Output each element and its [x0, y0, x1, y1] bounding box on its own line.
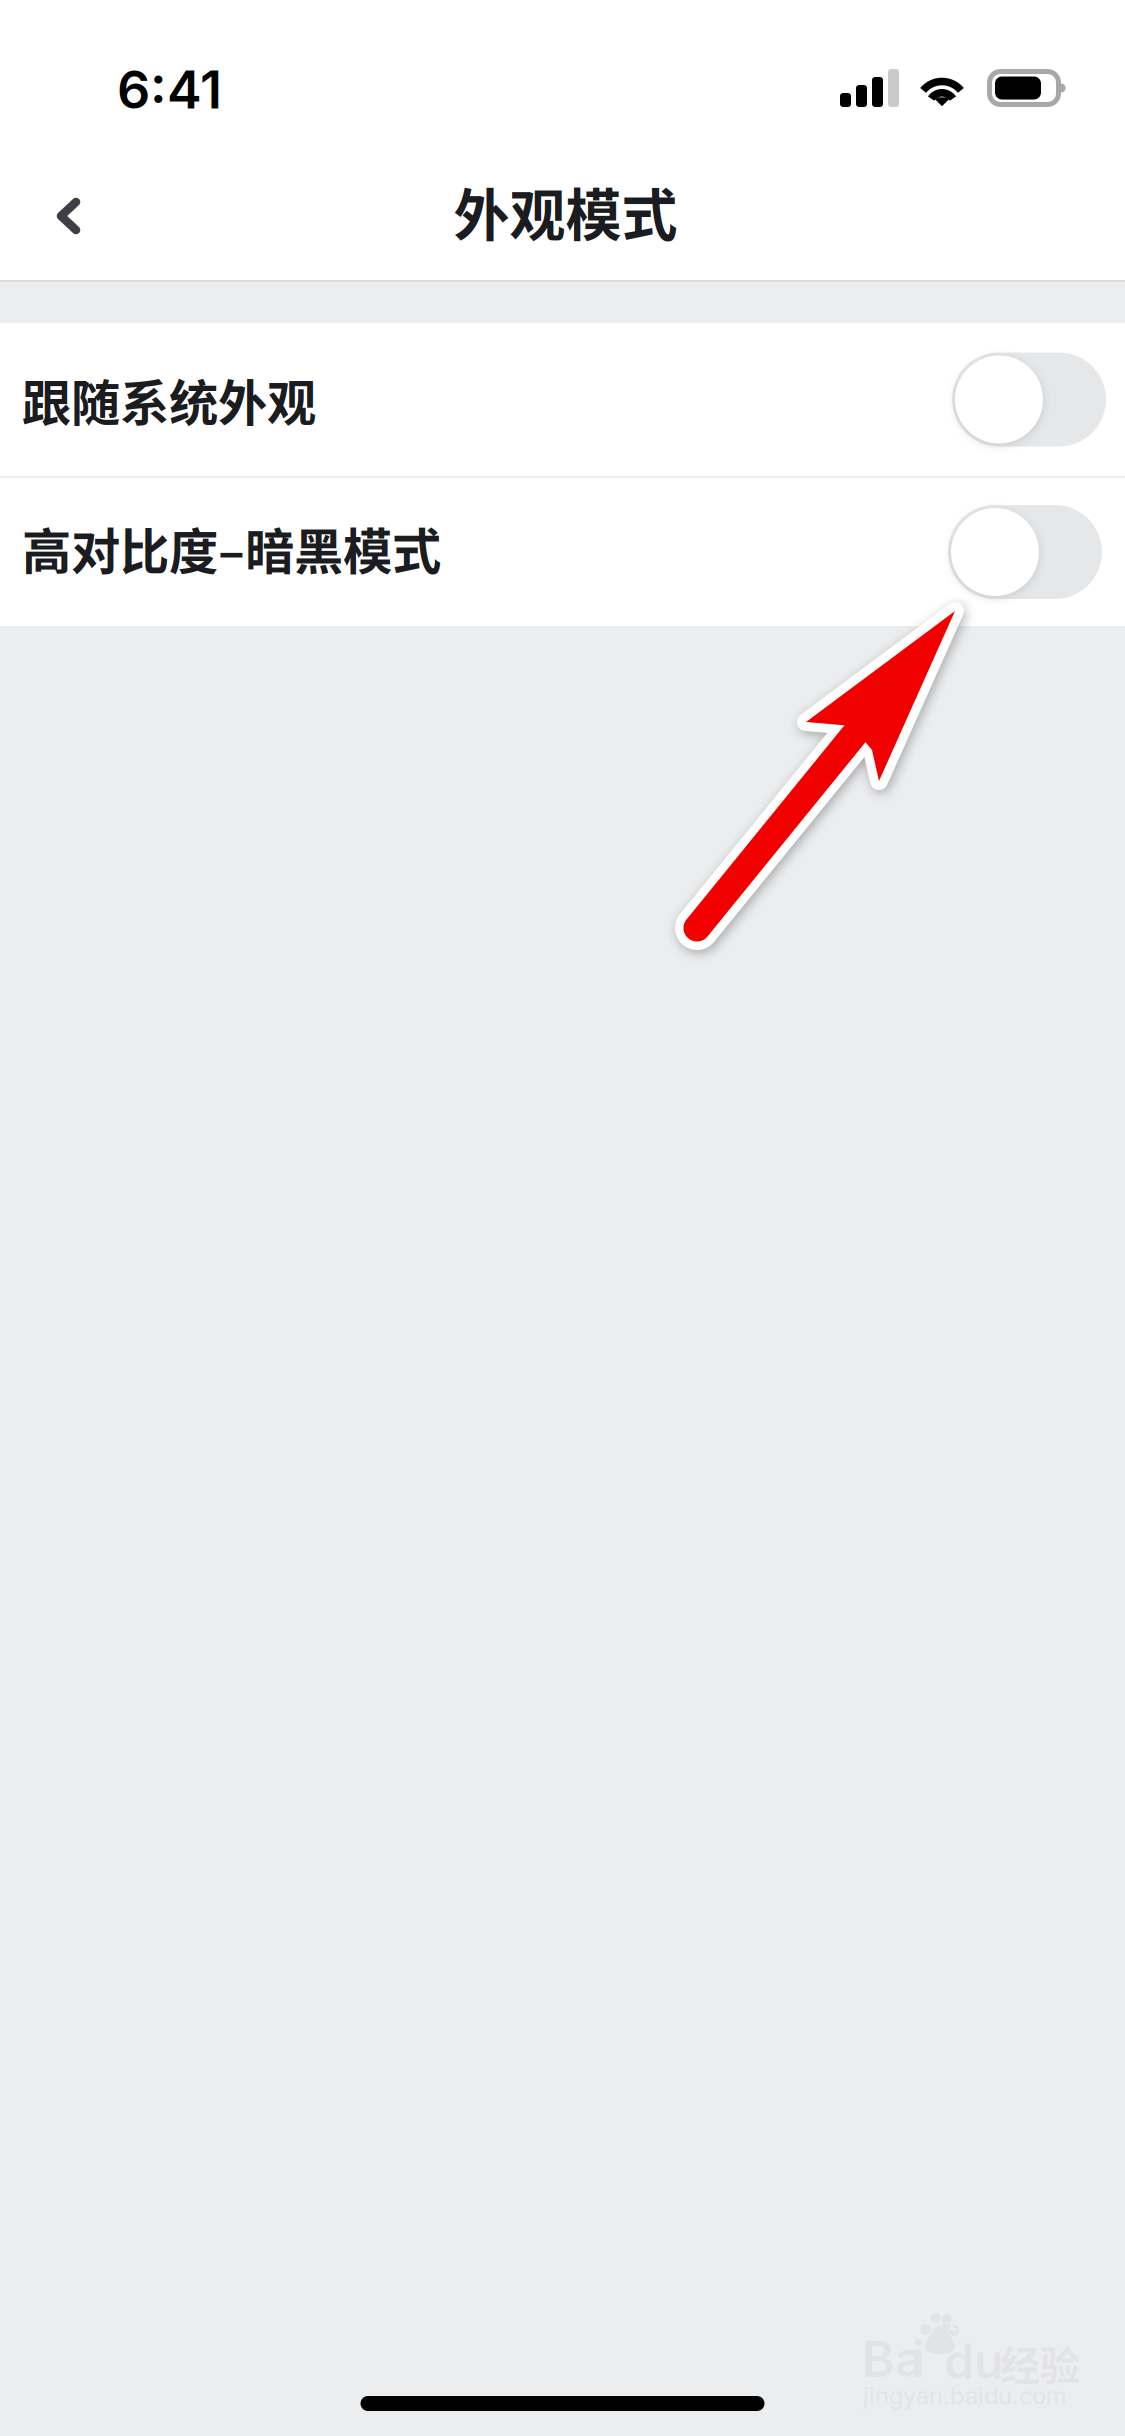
button[interactable]: 高对比度–暗黑模式	[0, 478, 1125, 626]
staticText: 高对比度–暗黑模式	[22, 512, 441, 584]
staticText: 6:41	[117, 58, 222, 121]
staticText: du	[944, 2332, 1003, 2390]
staticText: 经验	[1000, 2334, 1080, 2392]
staticText: i	[912, 2329, 925, 2389]
staticText: Ba	[862, 2329, 923, 2389]
staticText: 外观模式	[453, 170, 677, 252]
button[interactable]: Back	[14, 147, 116, 249]
staticText: jingyan.baidu.com	[863, 2381, 1067, 2410]
staticText: 跟随系统外观	[22, 364, 316, 435]
button[interactable]: 跟随系统外观	[0, 323, 1125, 476]
